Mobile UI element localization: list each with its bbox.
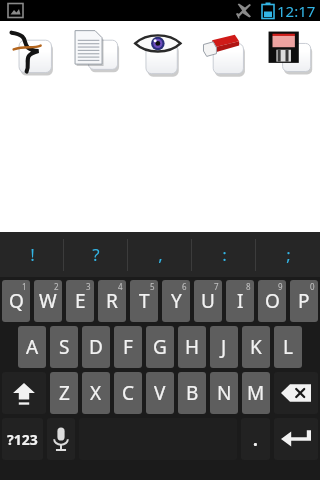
staticText: I [237, 288, 244, 314]
staticText: ; [286, 243, 291, 266]
button[interactable]: ; [256, 232, 320, 277]
staticText: 6 [182, 281, 187, 292]
button[interactable]: Draw [0, 21, 64, 81]
button[interactable]: V [146, 372, 174, 414]
button[interactable]: ?123 [2, 418, 43, 460]
button[interactable]: Enter [274, 418, 318, 460]
staticText: 5 [150, 281, 155, 292]
staticText: M [247, 380, 265, 406]
button[interactable]: J [210, 326, 238, 368]
staticText: O [265, 288, 280, 314]
button[interactable]: Save [256, 21, 320, 81]
button[interactable]: F [114, 326, 142, 368]
button[interactable]: ? [64, 232, 128, 277]
button[interactable]: Delete [274, 372, 318, 414]
staticText: E [75, 288, 86, 314]
button[interactable]: . [241, 418, 270, 460]
staticText: T [139, 288, 150, 314]
staticText: X [90, 380, 102, 406]
staticText: F [123, 334, 133, 360]
button[interactable]: U [194, 280, 222, 322]
button[interactable]: O [258, 280, 286, 322]
staticText: L [283, 334, 293, 360]
button[interactable]: G [146, 326, 174, 368]
button[interactable]: , [128, 232, 192, 277]
staticText: Y [171, 288, 182, 314]
button[interactable]: E [66, 280, 94, 322]
staticText: P [298, 288, 310, 314]
staticText: A [26, 334, 39, 360]
staticText: , [158, 243, 163, 266]
button[interactable]: X [82, 372, 110, 414]
staticText: : [222, 243, 227, 266]
button[interactable]: I [226, 280, 254, 322]
button[interactable]: Erase [192, 21, 256, 81]
staticText: C [122, 380, 135, 406]
staticText: 3 [86, 281, 91, 292]
staticText: 4 [118, 281, 123, 292]
button[interactable]: N [210, 372, 238, 414]
button[interactable]: H [178, 326, 206, 368]
button[interactable]: B [178, 372, 206, 414]
staticText: N [217, 380, 232, 406]
staticText: G [153, 334, 167, 360]
button[interactable]: S [50, 326, 78, 368]
staticText: Z [59, 380, 70, 406]
staticText: 9 [278, 281, 283, 292]
staticText: Q [9, 288, 24, 314]
staticText: R [106, 288, 118, 314]
staticText: 2 [54, 281, 59, 292]
button[interactable]: D [82, 326, 110, 368]
button[interactable]: R [98, 280, 126, 322]
button[interactable]: Z [50, 372, 78, 414]
staticText: 8 [246, 281, 251, 292]
button[interactable]: M [242, 372, 270, 414]
staticText: J [221, 334, 227, 360]
staticText: . [253, 428, 258, 451]
staticText: V [154, 380, 166, 406]
staticText: ? [92, 243, 100, 266]
button[interactable]: L [274, 326, 302, 368]
staticText: ! [30, 243, 35, 266]
button[interactable]: C [114, 372, 142, 414]
staticText: U [201, 288, 215, 314]
button[interactable]: K [242, 326, 270, 368]
button[interactable]: New document [64, 21, 128, 81]
staticText: 1 [22, 281, 27, 292]
staticText: S [59, 334, 70, 360]
button[interactable]: Y [162, 280, 190, 322]
staticText: B [186, 380, 199, 406]
staticText: 0 [310, 281, 315, 292]
staticText: H [185, 334, 200, 360]
staticText: ?123 [7, 430, 38, 449]
button[interactable]: ! [0, 232, 64, 277]
button[interactable]: A [18, 326, 46, 368]
button[interactable]: Voice input [47, 418, 75, 460]
button[interactable]: Q [2, 280, 30, 322]
button[interactable]: W [34, 280, 62, 322]
staticText: D [89, 334, 103, 360]
button[interactable]: : [192, 232, 256, 277]
button[interactable]: Preview [128, 21, 192, 81]
button[interactable]: T [130, 280, 158, 322]
staticText: 7 [214, 281, 219, 292]
staticText: K [250, 334, 262, 360]
staticText: 12:17 [277, 1, 316, 21]
staticText: W [39, 288, 57, 314]
button[interactable]: Shift [2, 372, 46, 414]
button[interactable]: P [290, 280, 318, 322]
